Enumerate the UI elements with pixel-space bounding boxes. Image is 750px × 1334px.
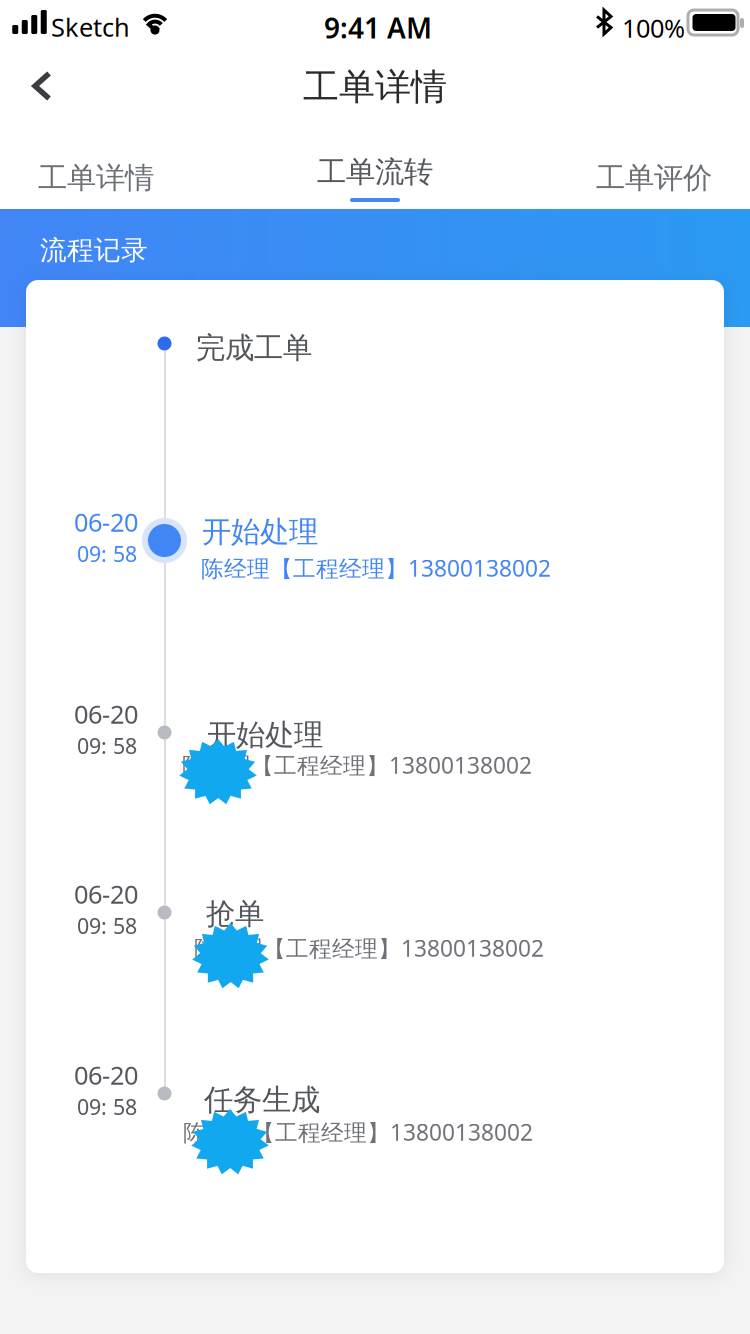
staticText: 陈经理【工程经理】13800138002 [201,553,551,583]
staticText: 06-20 [74,697,138,731]
button[interactable]: Back [0,44,84,128]
staticText: 09: 58 [77,732,137,760]
staticText: 09: 58 [77,1093,137,1121]
staticText: 09: 58 [77,540,137,568]
staticText: Sketch [51,10,130,44]
staticText: 完成工单 [196,330,312,366]
staticText: 06-20 [74,1058,138,1092]
staticText: 工单流转 [317,154,433,190]
staticText: 09: 58 [77,912,137,940]
staticText: 流程记录 [40,234,148,267]
staticText: 陈经理【工程经理】13800138002 [182,750,532,780]
staticText: 100% [622,11,685,45]
staticText: 陈经理【工程经理】13800138002 [194,933,544,963]
button[interactable]: 工单评价 [594,156,714,200]
staticText: 开始处理 [202,514,318,550]
staticText: 工单详情 [38,160,154,196]
staticText: 陈经理【工程经理】13800138002 [183,1117,533,1147]
staticText: 任务生成 [204,1082,320,1118]
staticText: 工单详情 [303,65,447,109]
staticText: 开始处理 [207,717,323,753]
staticText: 06-20 [74,505,138,539]
staticText: 9:41 AM [324,9,432,46]
button[interactable]: 工单流转 [315,150,435,206]
button[interactable]: 工单详情 [36,156,156,200]
staticText: 抢单 [206,896,264,932]
staticText: 06-20 [74,877,138,911]
staticText: 工单评价 [596,160,712,196]
